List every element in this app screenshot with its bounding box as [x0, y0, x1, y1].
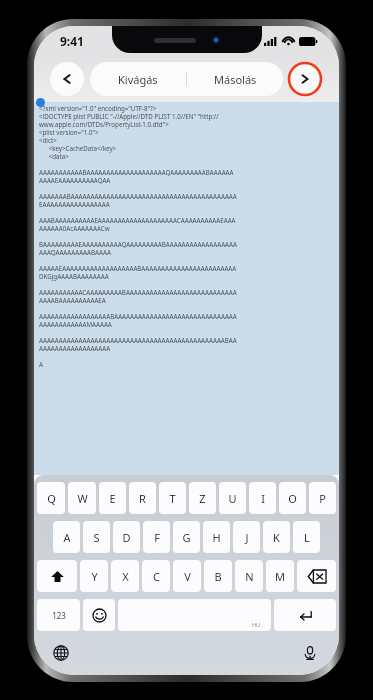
- button[interactable]: N: [235, 560, 263, 592]
- button[interactable]: <?xml version="1.0" encoding="UTF-8"?>: [34, 102, 339, 475]
- staticText: 9:41: [60, 33, 84, 49]
- staticText: <key>CacheData</key>: [39, 144, 117, 152]
- staticText: AAAAAEAAAAAAAAAAAAAAAAAAABAAAAAAAAAAAAAA…: [39, 264, 237, 272]
- staticText: M: [275, 569, 285, 584]
- staticText: DKGjgAAAABAAAAAAAA: [39, 272, 109, 280]
- staticText: Q: [47, 491, 56, 506]
- staticText: AAAAAAAAAAAAAAAAAAAAAAAAAAAAAAAAAAAAAAAA…: [39, 336, 237, 344]
- button[interactable]: Q: [37, 482, 65, 514]
- button[interactable]: Z: [189, 482, 216, 514]
- staticText: BAAAAAAAAAEAAAAAAAAAAQAAAAAAAAABAAAAAAAA…: [39, 240, 237, 248]
- staticText: AAAAEAAAAAAAAAAQAA: [39, 176, 111, 184]
- staticText: D: [122, 530, 131, 545]
- staticText: E: [109, 491, 116, 506]
- button[interactable]: R: [129, 482, 156, 514]
- staticText: AAAQAAAAAAAAABAAAA: [39, 248, 111, 256]
- staticText: A: [63, 530, 71, 545]
- staticText: AAAAAAAAAAAAAAAAAABAAAAAAAAAAAAAAAAAAAAA…: [39, 312, 237, 320]
- staticText: N: [245, 569, 254, 584]
- button[interactable]: Switch keyboard: [48, 640, 74, 666]
- staticText: R: [139, 491, 146, 506]
- button[interactable]: P: [309, 482, 336, 514]
- button[interactable]: M: [266, 560, 294, 592]
- staticText: 123: [52, 610, 66, 621]
- button[interactable]: S: [83, 521, 110, 553]
- staticText: <data>: [39, 152, 69, 160]
- staticText: H: [212, 530, 221, 545]
- button[interactable]: C: [142, 560, 170, 592]
- staticText: W: [77, 491, 88, 506]
- staticText: AAAAAAAAAAABAAAAAAAAAAAAAAAAAAAAQAAAAAAA…: [39, 168, 234, 176]
- staticText: P: [319, 491, 326, 506]
- staticText: I: [261, 491, 265, 506]
- button[interactable]: L: [293, 521, 320, 553]
- button[interactable]: A: [53, 521, 80, 553]
- button[interactable]: I: [249, 482, 276, 514]
- staticText: AAAAAAAAAAAAMAAAAA: [39, 320, 112, 328]
- staticText: <plist version="1.0">: [39, 128, 99, 136]
- staticText: K: [273, 530, 280, 545]
- staticText: EAAAAAAAAAAAAAAAAA: [39, 200, 110, 208]
- staticText: AAAAAAAAAAACAAAAAAAAABAAAAAAAAAAAAAAAAAA…: [39, 288, 237, 296]
- button[interactable]: Shift: [37, 560, 77, 592]
- staticText: G: [182, 530, 191, 545]
- staticText: L: [304, 530, 310, 545]
- staticText: C: [153, 569, 160, 584]
- button[interactable]: Return: [274, 599, 336, 631]
- staticText: X: [122, 569, 129, 584]
- staticText: <!DOCTYPE plist PUBLIC "-//Apple//DTD PL…: [39, 112, 219, 120]
- staticText: AAABAAAAAAAAAAEAAAAAAAAAAAAAAAAAAAACAAAA…: [39, 216, 236, 224]
- button[interactable]: H: [203, 521, 230, 553]
- button[interactable]: D: [113, 521, 140, 553]
- staticText: <?xml version="1.0" encoding="UTF-8"?>: [39, 104, 157, 112]
- button[interactable]: E: [99, 482, 126, 514]
- staticText: O: [288, 491, 297, 506]
- staticText: J: [245, 530, 249, 545]
- staticText: V: [184, 569, 191, 584]
- staticText: www.apple.com/DTDs/PropertyList-1.0.dtd"…: [39, 120, 169, 128]
- button[interactable]: U: [219, 482, 246, 514]
- staticText: Z: [199, 491, 206, 506]
- button[interactable]: F: [143, 521, 170, 553]
- button[interactable]: 123: [37, 599, 80, 631]
- button[interactable]: J: [233, 521, 260, 553]
- staticText: <dict>: [39, 136, 57, 144]
- staticText: U: [228, 491, 237, 506]
- button[interactable]: Emoji: [83, 599, 115, 631]
- staticText: S: [93, 530, 100, 545]
- staticText: AAAAAAABAAAAAAAAAAAAAAAAAAAAAAAAAAAAAAAA…: [39, 192, 237, 200]
- button[interactable]: W: [68, 482, 96, 514]
- button[interactable]: Dictation: [297, 640, 323, 666]
- button[interactable]: T: [159, 482, 186, 514]
- staticText: AAAABAAAAAAAAAAEA: [39, 296, 106, 304]
- button[interactable]: Kivágás: [90, 62, 186, 96]
- button[interactable]: K: [263, 521, 290, 553]
- staticText: AAAAAAAAAAAAAAAAAA: [39, 344, 111, 352]
- button[interactable]: Delete: [297, 560, 336, 592]
- button[interactable]: HU: [118, 599, 271, 631]
- button[interactable]: Back: [50, 62, 84, 96]
- button[interactable]: V: [173, 560, 201, 592]
- button[interactable]: G: [173, 521, 200, 553]
- staticText: A: [39, 360, 43, 368]
- button[interactable]: B: [204, 560, 232, 592]
- staticText: HU: [252, 621, 261, 628]
- button[interactable]: X: [111, 560, 139, 592]
- staticText: Másolás: [214, 72, 257, 87]
- button[interactable]: Y: [80, 560, 108, 592]
- staticText: F: [154, 530, 160, 545]
- staticText: T: [169, 491, 176, 506]
- button[interactable]: Forward: [287, 61, 323, 97]
- staticText: AAAAAA0AcAAAAAAACw: [39, 224, 110, 232]
- staticText: B: [214, 569, 222, 584]
- button[interactable]: Másolás: [187, 62, 283, 96]
- button[interactable]: O: [279, 482, 306, 514]
- staticText: Y: [91, 569, 98, 584]
- staticText: Kivágás: [118, 72, 158, 87]
